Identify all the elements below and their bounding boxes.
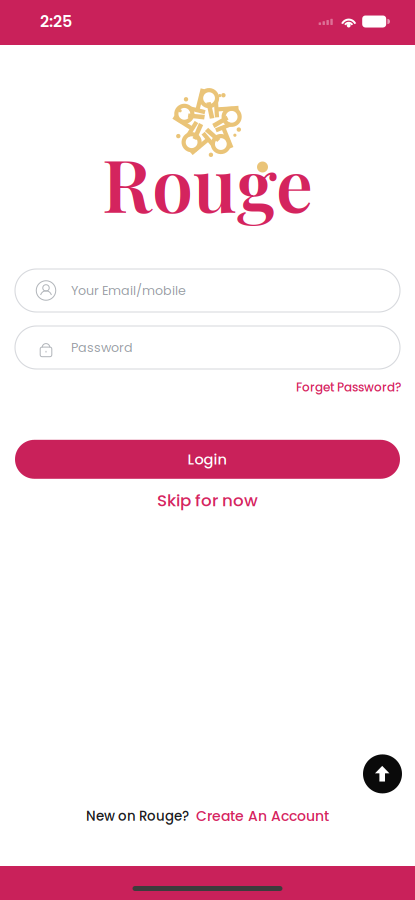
staticText: Rouge xyxy=(102,133,313,231)
staticText: Password xyxy=(71,339,133,356)
staticText: Your Email/mobile xyxy=(71,282,186,299)
staticText: 2:25 xyxy=(40,10,72,33)
staticText: Skip for now xyxy=(157,489,258,512)
staticText: Create An Account xyxy=(196,806,329,826)
staticText: New on Rouge? xyxy=(86,807,189,826)
button[interactable]: Skip for now xyxy=(157,489,258,512)
button[interactable]: Forget Password? xyxy=(296,379,401,396)
staticText: Forget Password? xyxy=(296,379,401,396)
button[interactable]: Login xyxy=(15,440,400,479)
button[interactable]: Create An Account xyxy=(196,806,329,826)
button[interactable]: Scroll to top xyxy=(363,754,402,793)
staticText: Login xyxy=(187,449,227,469)
